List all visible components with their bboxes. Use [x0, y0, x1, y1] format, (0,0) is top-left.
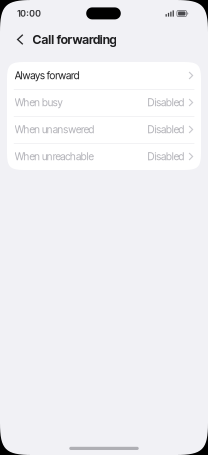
staticText: When unreachable: [15, 150, 93, 163]
button[interactable]: Back: [0, 27, 28, 52]
staticText: Disabled: [148, 96, 184, 109]
staticText: 10:00: [17, 8, 41, 19]
staticText: When busy: [15, 96, 62, 109]
staticText: Disabled: [148, 123, 184, 136]
staticText: Always forward: [15, 69, 80, 82]
staticText: When unanswered: [15, 123, 95, 136]
staticText: Call forwarding: [33, 32, 116, 47]
button[interactable]: When unreachable: [7, 143, 201, 170]
button[interactable]: When unanswered: [7, 116, 201, 143]
staticText: Disabled: [148, 150, 184, 163]
button[interactable]: When busy: [7, 89, 201, 116]
button[interactable]: Always forward: [7, 62, 201, 89]
